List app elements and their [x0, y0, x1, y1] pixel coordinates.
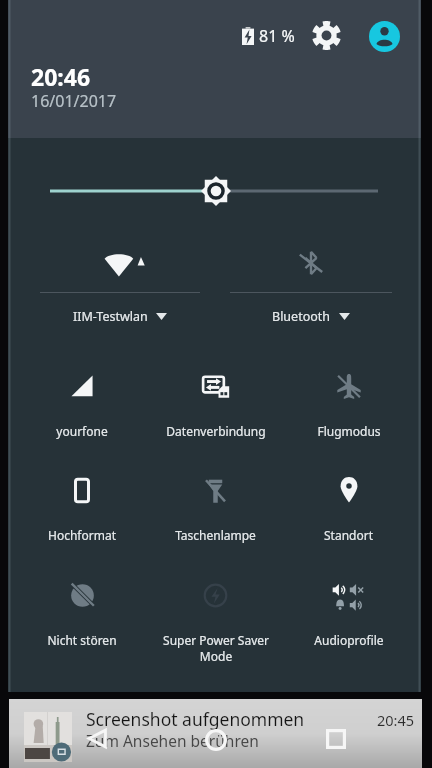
staticText: Datenverbindung [166, 423, 266, 439]
button[interactable]: Recent apps [314, 717, 358, 761]
button[interactable]: IIM-Testwlan [32, 240, 208, 332]
button[interactable]: Super Power Saver Mode [149, 576, 282, 676]
button[interactable]: User account [360, 12, 408, 60]
staticText: Standort [324, 527, 373, 543]
staticText: 81 % [259, 25, 295, 47]
button[interactable]: Screenshot aufgenommen [9, 699, 422, 768]
button[interactable]: yourfone [15, 367, 149, 467]
button[interactable]: Back [75, 716, 119, 760]
button[interactable]: Settings [300, 9, 352, 61]
button[interactable]: Flugmodus [282, 367, 415, 467]
button[interactable]: Home [194, 718, 238, 762]
staticText: Flugmodus [317, 423, 381, 439]
staticText: Nicht stören [47, 632, 117, 648]
button[interactable]: Standort [282, 471, 415, 571]
staticText: Audioprofile [314, 632, 384, 648]
button[interactable]: Datenverbindung [149, 367, 282, 467]
staticText: 16/01/2017 [31, 90, 117, 112]
staticText: Zum Ansehen berühren [86, 730, 259, 751]
staticText: yourfone [56, 423, 108, 439]
button[interactable]: Bluetooth [222, 240, 400, 332]
button[interactable]: Taschenlampe [149, 471, 282, 571]
staticText: IIM-Testwlan [73, 308, 148, 325]
staticText: 20:45 [377, 710, 415, 730]
staticText: Bluetooth [272, 308, 331, 325]
staticText: Screenshot aufgenommen [86, 707, 305, 731]
staticText: 20:46 [31, 61, 91, 92]
button[interactable]: Nicht stören [15, 576, 149, 676]
staticText: Taschenlampe [175, 527, 256, 543]
button[interactable]: Audioprofile [282, 576, 415, 676]
staticText: Super Power Saver Mode [163, 632, 269, 665]
button[interactable]: Hochformat [15, 471, 149, 571]
staticText: Hochformat [48, 527, 116, 543]
